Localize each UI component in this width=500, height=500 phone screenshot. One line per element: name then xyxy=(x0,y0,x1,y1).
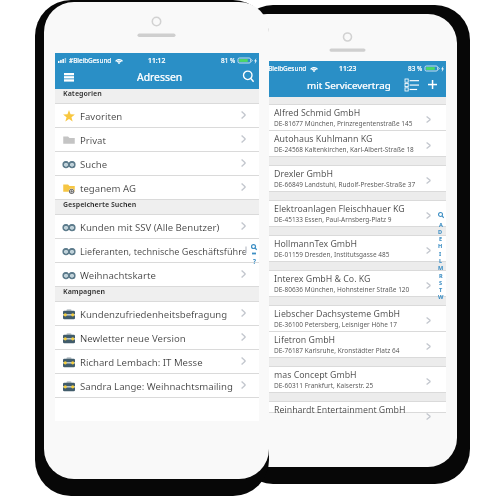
staticText: Lieferanten, technische Geschäftsführer xyxy=(80,245,246,257)
button[interactable]: Kundenzufriedenheitsbefragung xyxy=(55,302,259,326)
staticText: Richard Lembach: IT Messe xyxy=(80,356,203,369)
button[interactable]: Menu xyxy=(58,66,80,88)
staticText: Kunden mit SSV (Alle Benutzer) xyxy=(80,221,220,234)
staticText: DE-81677 München, Prinzregentenstraße 14… xyxy=(274,119,413,128)
staticText: mit Servicevertrag xyxy=(307,79,391,92)
staticText: Favoriten xyxy=(80,110,123,123)
button[interactable]: Privat xyxy=(55,128,259,152)
staticText: Reinhardt Entertainment GmbH xyxy=(274,404,406,413)
staticText: #BleibGesund xyxy=(264,64,307,73)
staticText: Lifetron GmbH xyxy=(274,334,336,346)
staticText: DE-24568 Kaltenkirchen, Karl-Albert-Stra… xyxy=(274,145,414,154)
button[interactable]: HollmannTex GmbH xyxy=(250,236,446,262)
staticText: Suche xyxy=(80,158,108,171)
staticText: 11:23 xyxy=(339,64,357,73)
staticText: E xyxy=(439,235,443,243)
staticText: Autohaus Kuhlmann KG xyxy=(274,133,373,145)
button[interactable]: Suche xyxy=(55,152,259,176)
button[interactable]: Interex GmbH & Co. KG xyxy=(250,271,446,297)
button[interactable]: Kunden mit SSV (Alle Benutzer) xyxy=(55,215,259,239)
staticText: I xyxy=(439,250,442,258)
staticText: Elektroanlagen Fleischhauer KG xyxy=(274,203,405,215)
button[interactable]: Select list xyxy=(403,76,420,93)
button[interactable]: Sandra Lange: Weihnachtsmailing xyxy=(55,374,259,398)
staticText: 83 % xyxy=(408,64,423,73)
staticText: Sandra Lange: Weihnachtsmailing xyxy=(80,380,233,393)
staticText: M xyxy=(438,264,444,272)
staticText: DE-36100 Petersberg, Leisniger Höhe 17 xyxy=(274,320,398,329)
staticText: Drexler GmbH xyxy=(274,168,334,180)
staticText: #BleibGesund xyxy=(69,56,112,65)
staticText: L xyxy=(439,257,443,265)
button[interactable]: mas Concept GmbH xyxy=(250,367,446,393)
button[interactable]: Add xyxy=(424,76,441,93)
staticText: D xyxy=(438,228,443,236)
staticText: Adressen xyxy=(137,70,183,84)
staticText: mas Concept GmbH xyxy=(274,369,357,381)
staticText: Kundenzufriedenheitsbefragung xyxy=(80,308,228,321)
button[interactable]: Weihnachtskarte xyxy=(55,263,259,287)
staticText: ? xyxy=(253,257,256,265)
staticText: Newletter neue Version xyxy=(80,332,186,345)
button[interactable]: Section index xyxy=(437,212,444,304)
button[interactable]: Newletter neue Version xyxy=(55,326,259,350)
staticText: 81 % xyxy=(221,56,236,65)
button[interactable]: Liebscher Dachsysteme GmbH xyxy=(250,306,446,332)
staticText: Liebscher Dachsysteme GmbH xyxy=(274,308,401,320)
staticText: HollmannTex GmbH xyxy=(274,238,357,250)
staticText: DE-01159 Dresden, Institutsgasse 485 xyxy=(274,250,390,259)
staticText: DE-45133 Essen, Paul-Arnsberg-Platz 9 xyxy=(274,215,392,224)
staticText: Kategorien xyxy=(63,89,102,99)
staticText: teganem AG xyxy=(80,182,136,195)
button[interactable]: Reinhardt Entertainment GmbH xyxy=(250,402,446,413)
staticText: DE-76187 Karlsruhe, Kronstädter Platz 64 xyxy=(274,346,400,355)
button[interactable]: Lieferanten, technische Geschäftsführer xyxy=(55,239,259,263)
staticText: DE-66849 Landstuhl, Rudolf-Presber-Straß… xyxy=(274,180,416,189)
button[interactable]: teganem AG xyxy=(55,176,259,200)
staticText: Gespeicherte Suchen xyxy=(63,200,137,210)
button[interactable]: Alfred Schmid GmbH xyxy=(250,105,446,131)
staticText: T xyxy=(439,286,443,294)
staticText: Interex GmbH & Co. KG xyxy=(274,273,371,285)
staticText: Weihnachtskarte xyxy=(80,269,156,282)
staticText: A xyxy=(439,221,443,229)
staticText: DE-60311 Frankfurt, Kaiserstr. 25 xyxy=(274,381,374,390)
button[interactable]: Favoriten xyxy=(55,104,259,128)
staticText: H xyxy=(438,242,443,250)
staticText: Alfred Schmid GmbH xyxy=(274,107,361,119)
staticText: 11:12 xyxy=(148,56,166,65)
button[interactable]: Autohaus Kuhlmann KG xyxy=(250,131,446,157)
staticText: Kampagnen xyxy=(63,287,105,297)
staticText: S xyxy=(439,279,443,287)
button[interactable]: Elektroanlagen Fleischhauer KG xyxy=(250,201,446,227)
staticText: DE-80636 München, Hohnsteiner Straße 120 xyxy=(274,285,410,294)
staticText: W xyxy=(438,293,444,301)
button[interactable]: Richard Lembach: IT Messe xyxy=(55,350,259,374)
staticText: R xyxy=(439,272,443,280)
staticText: Privat xyxy=(80,134,106,147)
button[interactable]: Lifetron GmbH xyxy=(250,332,446,358)
button[interactable]: Drexler GmbH xyxy=(250,166,446,192)
button[interactable]: Search xyxy=(237,65,259,87)
